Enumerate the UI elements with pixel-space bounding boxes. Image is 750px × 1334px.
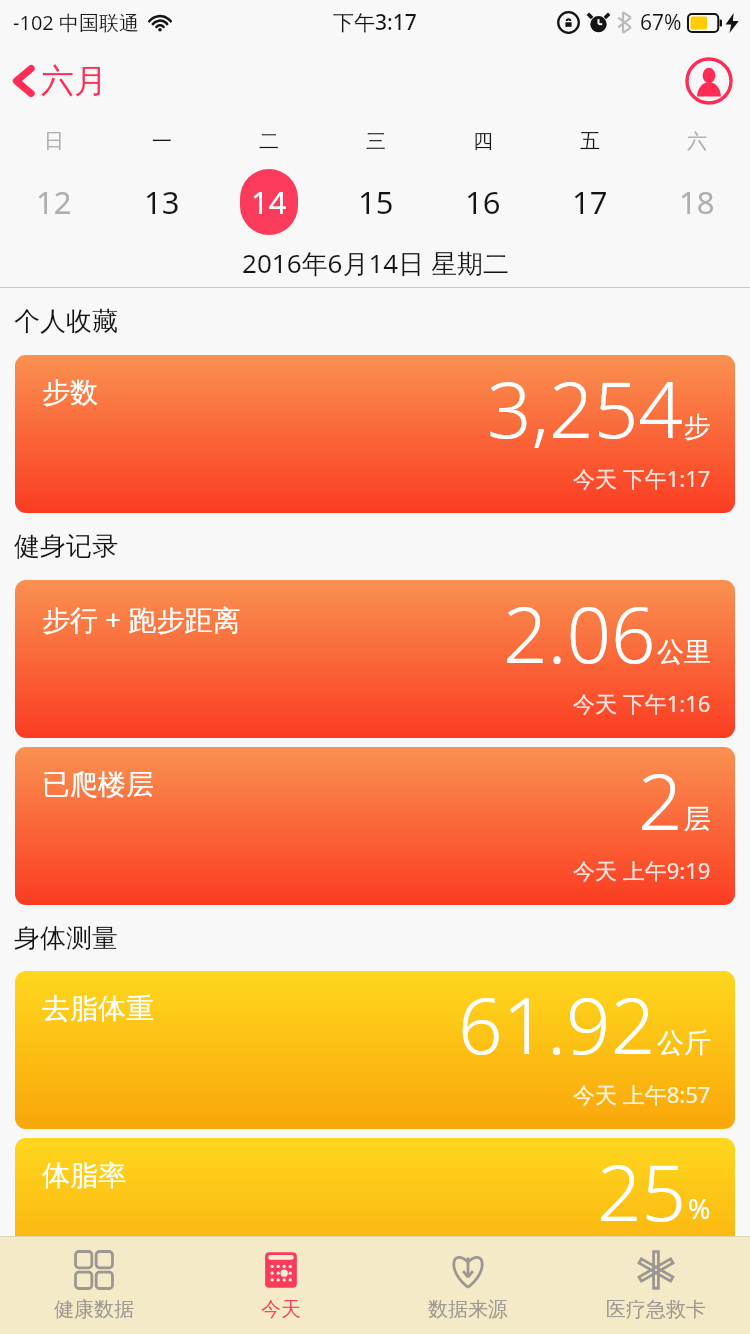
staticText: 个人收藏 <box>14 305 118 338</box>
staticText: 公里 <box>657 635 711 669</box>
button[interactable]: Profile <box>685 57 733 105</box>
staticText: 健身记录 <box>14 530 118 563</box>
button[interactable]: 18 <box>643 164 750 239</box>
staticText: 14 <box>251 181 287 223</box>
button[interactable]: 16 <box>429 164 536 239</box>
button[interactable]: 步行 + 跑步距离 <box>15 580 735 738</box>
button[interactable]: 13 <box>108 164 215 239</box>
staticText: 2016年6月14日 星期二 <box>242 245 509 281</box>
button[interactable]: 六月 <box>0 54 119 108</box>
button[interactable]: 今天 <box>187 1237 374 1334</box>
staticText: 步行 + 跑步距离 <box>42 600 241 638</box>
button[interactable]: 健康数据 <box>0 1237 187 1334</box>
staticText: 六月 <box>41 60 107 102</box>
staticText: 六 <box>687 129 707 154</box>
staticText: 身体测量 <box>14 922 118 955</box>
staticText: 一 <box>152 129 172 154</box>
staticText: 今天 上午9:19 <box>573 855 711 885</box>
staticText: -102 中国联通 <box>13 9 139 36</box>
staticText: 18 <box>679 181 715 223</box>
staticText: 61.92 <box>458 971 656 1077</box>
staticText: 三 <box>366 129 386 154</box>
staticText: 13 <box>144 181 180 223</box>
staticText: 二 <box>259 129 279 154</box>
staticText: 16 <box>465 181 501 223</box>
staticText: 五 <box>580 129 600 154</box>
staticText: % <box>688 1190 711 1227</box>
staticText: 四 <box>473 129 493 154</box>
staticText: 17 <box>572 181 608 223</box>
button[interactable]: 医疗急救卡 <box>562 1237 750 1334</box>
staticText: 25 <box>597 1138 687 1244</box>
button[interactable]: 数据来源 <box>374 1237 562 1334</box>
staticText: 层 <box>684 802 711 836</box>
staticText: 医疗急救卡 <box>606 1297 706 1322</box>
staticText: 今天 上午8:57 <box>573 1079 711 1109</box>
button[interactable]: 已爬楼层 <box>15 747 735 905</box>
button[interactable]: 14 <box>215 164 322 239</box>
staticText: 15 <box>358 181 394 223</box>
staticText: 去脂体重 <box>42 991 154 1026</box>
button[interactable]: 15 <box>322 164 429 239</box>
staticText: 2.06 <box>503 580 656 686</box>
staticText: 12 <box>36 181 72 223</box>
button[interactable]: 去脂体重 <box>15 971 735 1129</box>
staticText: 日 <box>44 129 64 154</box>
staticText: 67% <box>640 8 682 37</box>
button[interactable]: 步数 <box>15 355 735 513</box>
staticText: 公斤 <box>657 1026 711 1060</box>
button[interactable]: 17 <box>536 164 643 239</box>
staticText: 下午3:17 <box>333 8 417 37</box>
staticText: 体脂率 <box>42 1158 126 1193</box>
staticText: 3,254 <box>487 355 683 461</box>
button[interactable]: 体脂率 <box>15 1138 735 1296</box>
staticText: 今天 下午1:16 <box>573 688 711 718</box>
staticText: 数据来源 <box>428 1297 508 1322</box>
staticText: 今天 下午1:17 <box>573 463 711 493</box>
staticText: 健康数据 <box>54 1297 134 1322</box>
staticText: 步 <box>684 410 711 444</box>
staticText: 步数 <box>42 375 98 410</box>
staticText: 2 <box>638 747 683 853</box>
button[interactable]: 12 <box>0 164 108 239</box>
staticText: 今天 <box>261 1297 301 1322</box>
staticText: 已爬楼层 <box>42 767 154 802</box>
